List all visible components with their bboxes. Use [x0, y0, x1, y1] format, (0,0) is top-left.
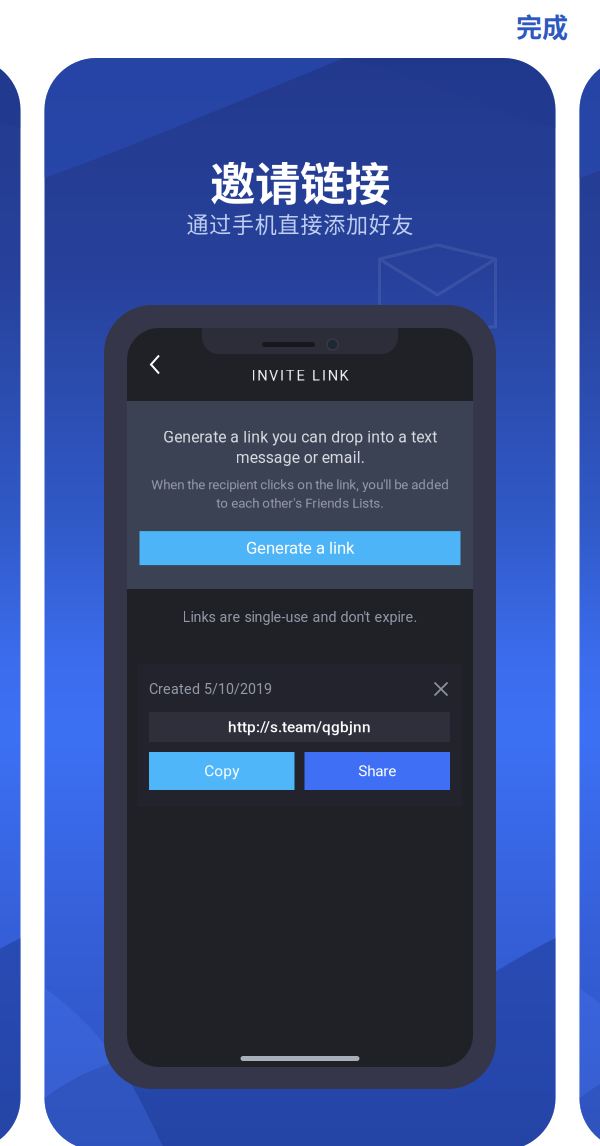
button[interactable]: Back	[138, 343, 172, 385]
staticText: INVITE LINK	[251, 367, 348, 384]
staticText: Created 5/10/2019	[149, 681, 272, 697]
button[interactable]: Copy	[149, 752, 294, 790]
staticText: When the recipient clicks on the link, y…	[151, 477, 449, 511]
button[interactable]: Generate a link	[139, 531, 460, 565]
staticText: 完成	[516, 7, 568, 45]
button[interactable]: 完成	[496, 0, 600, 52]
staticText: 邀请链接	[210, 148, 390, 214]
staticText: Generate a link you can drop into a text…	[163, 428, 437, 467]
staticText: http://s.team/qgbjnn	[228, 718, 371, 736]
staticText: Share	[358, 762, 396, 780]
staticText: Copy	[204, 762, 239, 780]
staticText: Generate a link	[246, 538, 354, 558]
button[interactable]: Close	[433, 681, 449, 697]
staticText: 通过手机直接添加好友	[186, 207, 414, 239]
staticText: Links are single-use and don't expire.	[182, 609, 417, 625]
button[interactable]: Share	[304, 752, 450, 790]
